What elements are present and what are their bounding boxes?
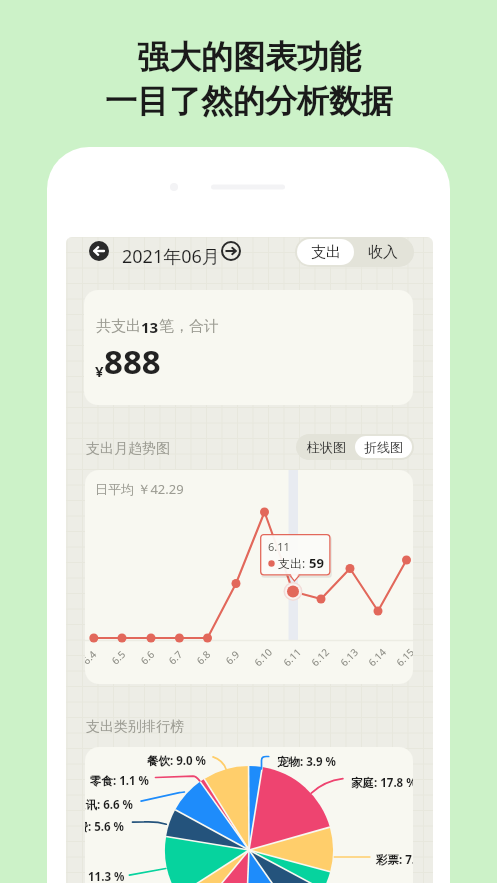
staticText: 2021年06月 [122,244,220,269]
staticText: 888 [104,339,161,384]
staticText: 收入 [368,243,398,262]
staticText: 6.8 [193,647,214,667]
staticText: 6.4 [85,647,100,667]
staticText: 家庭: 17.8 % [351,775,413,791]
staticText: 共支出 [96,317,141,336]
staticText: 6.7 [165,647,186,667]
staticText: 6.13 [337,645,361,669]
staticText: 日平均 ￥42.29 [95,480,184,498]
button[interactable]: 收入 [354,239,412,265]
staticText: 支出月趋势图 [86,440,170,458]
staticText: 11.3 % [88,869,125,883]
staticText: 折线图 [364,439,403,455]
staticText: 6.11 [280,645,304,669]
staticText: 6.11 [268,539,290,554]
staticText: 彩票: 7.3 % [376,852,413,868]
staticText: 6.10 [251,645,275,669]
button[interactable]: 折线图 [355,436,412,458]
staticText: ¥ [95,361,104,381]
staticText: 6.15 [393,645,413,669]
staticText: 支出 [311,243,341,262]
staticText: 通讯: 6.6 % [85,797,133,813]
button[interactable]: 共支出 [84,290,413,405]
button[interactable]: Next month [221,241,241,261]
staticText: 强大的图表功能 [137,37,361,77]
staticText: 13 [141,317,159,337]
staticText: 支出类别排行榜 [86,718,184,736]
staticText: 宠物: 3.9 % [277,754,336,770]
staticText: 一目了然的分析数据 [105,81,393,121]
staticText: 零食: 1.1 % [90,773,149,789]
staticText: 6.12 [308,645,332,669]
staticText: 餐费: 5.6 % [85,819,124,835]
button[interactable]: Previous month [89,241,109,261]
staticText: 6.9 [222,647,243,667]
staticText: 59 [309,554,324,572]
button[interactable]: 柱状图 [298,436,355,458]
staticText: 支出: [278,555,309,571]
button[interactable]: 支出 [297,239,354,265]
staticText: 6.6 [137,647,158,667]
staticText: 笔，合计 [159,317,219,336]
staticText: 餐饮: 9.0 % [147,753,206,769]
staticText: 6.5 [108,647,129,667]
staticText: 6.14 [365,645,389,669]
staticText: 柱状图 [307,439,346,455]
